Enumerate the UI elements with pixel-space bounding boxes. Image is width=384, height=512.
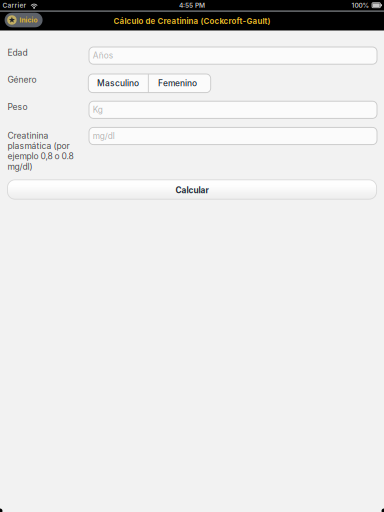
- staticText: 100%: [352, 1, 370, 9]
- button[interactable]: Femenino: [149, 74, 211, 93]
- button[interactable]: Masculino: [88, 74, 148, 93]
- staticText: Cálculo de Creatinina (Cockcroft-Gault): [113, 16, 270, 26]
- staticText: Inicio: [20, 16, 38, 24]
- staticText: Edad: [7, 48, 27, 58]
- button[interactable]: Calcular: [7, 180, 377, 199]
- staticText: Kg: [93, 105, 103, 115]
- staticText: Carrier: [3, 1, 27, 9]
- staticText: Años: [93, 51, 113, 61]
- staticText: mg/dl: [93, 131, 115, 141]
- staticText: 4:55 PM: [179, 1, 205, 9]
- button[interactable]: Inicio: [5, 13, 43, 27]
- staticText: Femenino: [158, 78, 197, 88]
- staticText: Peso: [7, 102, 27, 112]
- staticText: Creatinina plasmática (por ejemplo 0,8 o…: [7, 130, 73, 172]
- staticText: Calcular: [176, 185, 209, 195]
- staticText: Masculino: [97, 78, 139, 88]
- staticText: Género: [7, 75, 36, 85]
